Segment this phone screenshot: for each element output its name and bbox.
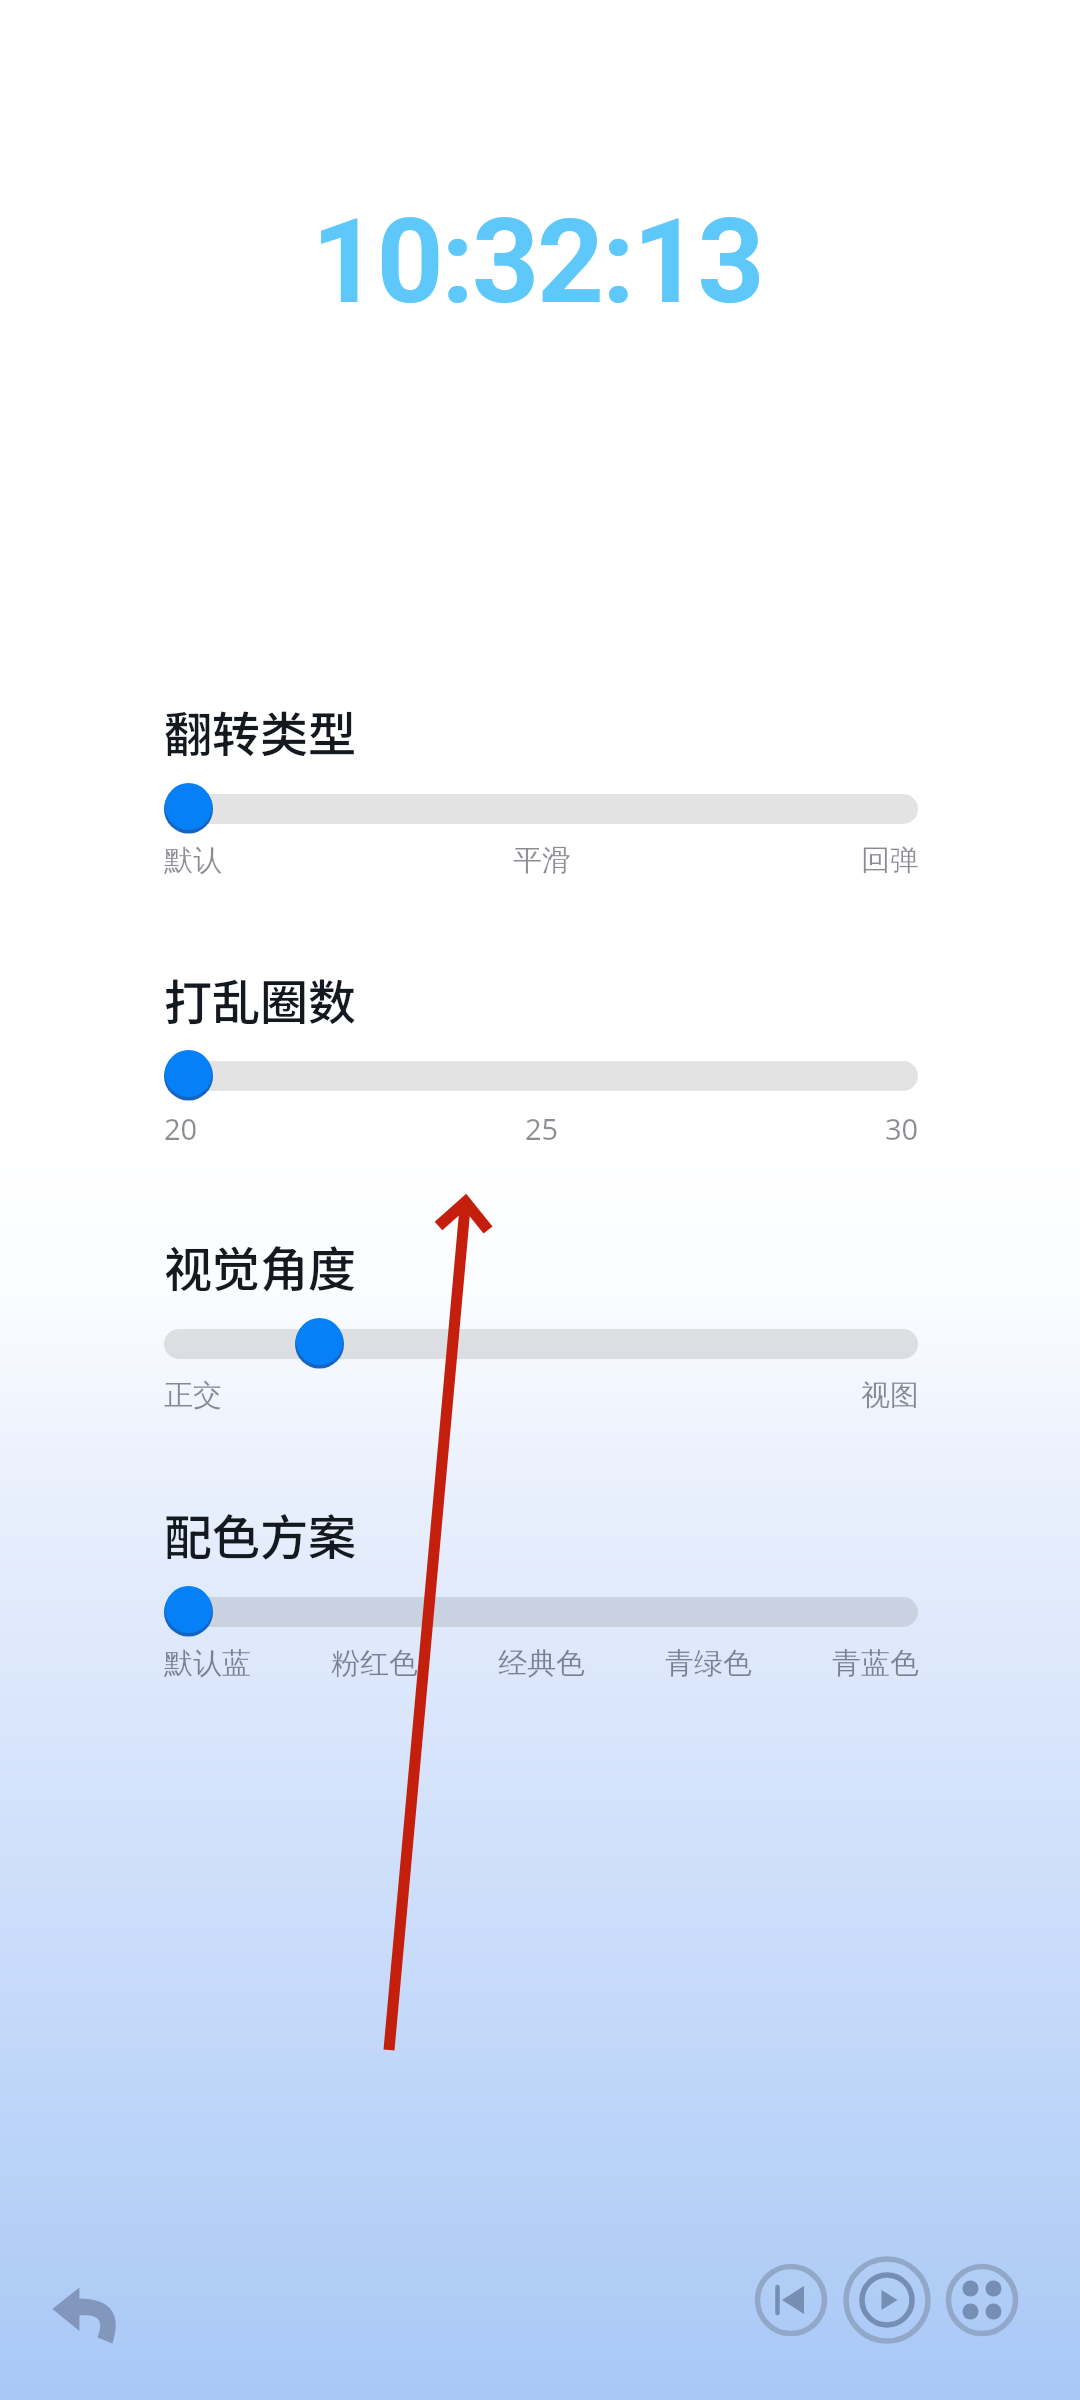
button[interactable]: 粉红色 <box>331 1645 418 1682</box>
button[interactable]: Undo <box>25 2260 145 2380</box>
button[interactable] <box>164 1585 918 1634</box>
button[interactable] <box>164 782 918 831</box>
staticText: 默认蓝 <box>164 1645 251 1682</box>
button[interactable]: 配色方案 <box>164 1499 357 1569</box>
staticText: 配色方案 <box>164 1499 357 1569</box>
button[interactable]: Apps <box>936 2254 1028 2346</box>
button[interactable]: 10:32:13 <box>0 193 1077 330</box>
button[interactable]: 青蓝色 <box>832 1645 919 1682</box>
staticText: 打乱圈数 <box>164 964 357 1034</box>
staticText: 30 <box>885 1109 919 1148</box>
staticText: 青蓝色 <box>832 1645 919 1682</box>
button[interactable]: 默认蓝 <box>164 1645 251 1682</box>
staticText: 正交 <box>164 1377 222 1414</box>
button[interactable]: 30 <box>885 1109 919 1148</box>
staticText: 20 <box>164 1109 198 1148</box>
button[interactable]: 正交 <box>164 1377 222 1414</box>
button[interactable]: 20 <box>164 1109 198 1148</box>
button[interactable] <box>164 1317 918 1366</box>
staticText: 视图 <box>861 1377 919 1414</box>
staticText: 平滑 <box>513 842 571 879</box>
button[interactable]: 青绿色 <box>665 1645 752 1682</box>
staticText: 视觉角度 <box>164 1231 357 1301</box>
staticText: 10:32:13 <box>311 193 763 330</box>
staticText: 翻转类型 <box>164 696 357 766</box>
button[interactable]: 视觉角度 <box>164 1231 357 1301</box>
button[interactable]: 25 <box>525 1109 559 1148</box>
button[interactable]: 视图 <box>861 1377 919 1414</box>
staticText: 粉红色 <box>331 1645 418 1682</box>
staticText: 经典色 <box>498 1645 585 1682</box>
button[interactable]: 打乱圈数 <box>164 964 357 1034</box>
button[interactable]: Previous <box>745 2254 837 2346</box>
staticText: 25 <box>525 1109 559 1148</box>
staticText: 青绿色 <box>665 1645 752 1682</box>
button[interactable]: 翻转类型 <box>164 696 357 766</box>
button[interactable]: 平滑 <box>513 842 571 879</box>
button[interactable]: 经典色 <box>498 1645 585 1682</box>
staticText: 默认 <box>164 842 222 879</box>
button[interactable]: 回弹 <box>861 842 919 879</box>
staticText: 回弹 <box>861 842 919 879</box>
button[interactable]: 默认 <box>164 842 222 879</box>
button[interactable] <box>164 1049 918 1098</box>
button[interactable]: Play <box>837 2250 937 2350</box>
